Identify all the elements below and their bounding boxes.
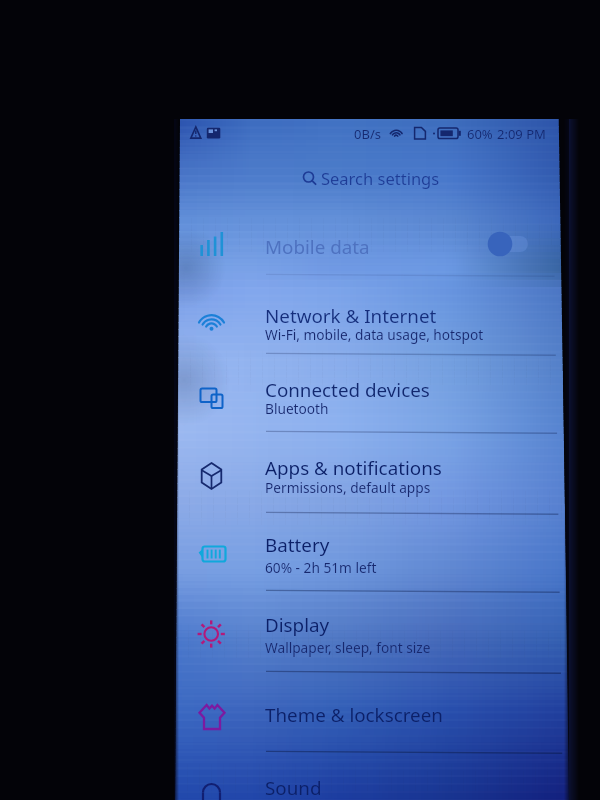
button[interactable]: Apps & notifications (176, 433, 560, 513)
button[interactable]: Connected devices (176, 352, 560, 432)
button[interactable]: Battery (176, 511, 560, 591)
staticText: Wallpaper, sleep, font size (265, 638, 431, 657)
staticText: Bluetooth (265, 399, 329, 418)
staticText: Connected devices (265, 377, 430, 403)
button[interactable]: Mobile data (176, 195, 560, 275)
staticText: 60% - 2h 51m left (265, 558, 377, 577)
staticText: 0B/s (354, 125, 381, 143)
button[interactable]: Display (176, 592, 560, 672)
button[interactable]: Theme & lockscreen (176, 672, 560, 752)
staticText: Network & Internet (265, 303, 437, 329)
button[interactable]: Network & Internet (176, 274, 560, 354)
staticText: Theme & lockscreen (265, 702, 443, 728)
staticText: Display (265, 612, 330, 638)
staticText: 2:09 PM (497, 125, 546, 143)
button[interactable]: Search settings (321, 167, 440, 189)
staticText: Permissions, default apps (265, 478, 431, 497)
staticText: Mobile data (265, 234, 370, 260)
staticText: Sound (265, 775, 322, 800)
staticText: Battery (265, 532, 330, 558)
staticText: Wi-Fi, mobile, data usage, hotspot (265, 325, 484, 344)
button[interactable]: Search settings (300, 160, 445, 192)
staticText: Apps & notifications (265, 455, 442, 481)
staticText: 60% (467, 125, 493, 143)
